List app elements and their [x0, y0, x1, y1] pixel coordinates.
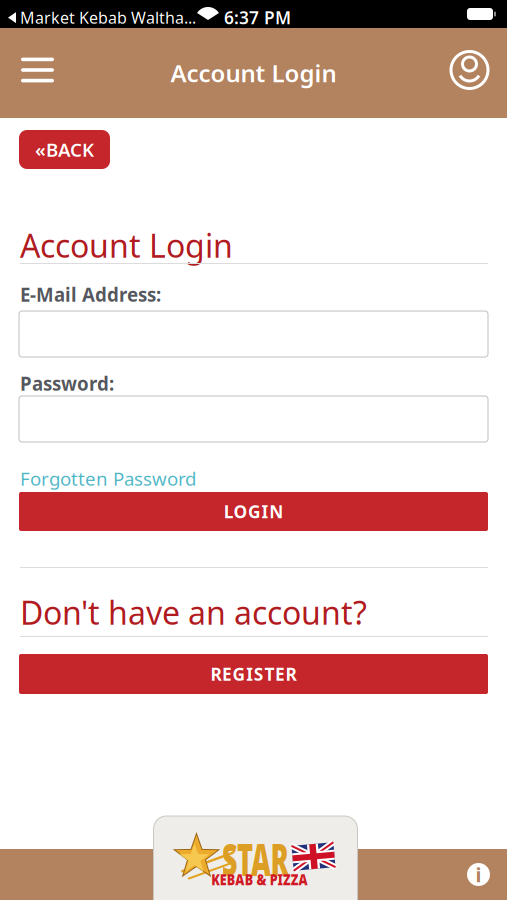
staticText: REGISTER: [210, 662, 297, 685]
staticText: Account Login: [20, 224, 233, 266]
staticText: LOGIN: [224, 500, 283, 523]
staticText: Don't have an account?: [20, 591, 367, 633]
staticText: 6:37 PM: [224, 6, 291, 29]
staticText: Market Kebab Waltha...: [20, 7, 196, 28]
button[interactable]: E-Mail Address: [19, 311, 488, 357]
button[interactable]: Info: [467, 861, 490, 888]
button[interactable]: Return to Market Kebab Waltham app: [8, 7, 196, 28]
staticText: Password:: [20, 371, 114, 396]
button[interactable]: Forgotten Password: [20, 466, 196, 491]
staticText: E-Mail Address:: [20, 282, 161, 307]
staticText: Account Login: [170, 57, 336, 89]
button[interactable]: LOGIN: [19, 492, 488, 531]
staticText: STAR: [201, 830, 310, 888]
button[interactable]: Password: [19, 396, 488, 442]
button[interactable]: Menu: [21, 50, 54, 90]
staticText: KEBAB & PIZZA: [197, 868, 321, 890]
button[interactable]: «BACK: [19, 130, 110, 169]
button[interactable]: Star Kebab and Pizza: [153, 816, 357, 900]
button[interactable]: REGISTER: [19, 654, 488, 694]
staticText: Forgotten Password: [20, 466, 196, 491]
button[interactable]: Account: [451, 51, 488, 88]
staticText: «BACK: [35, 137, 94, 162]
staticText: i: [475, 861, 481, 888]
